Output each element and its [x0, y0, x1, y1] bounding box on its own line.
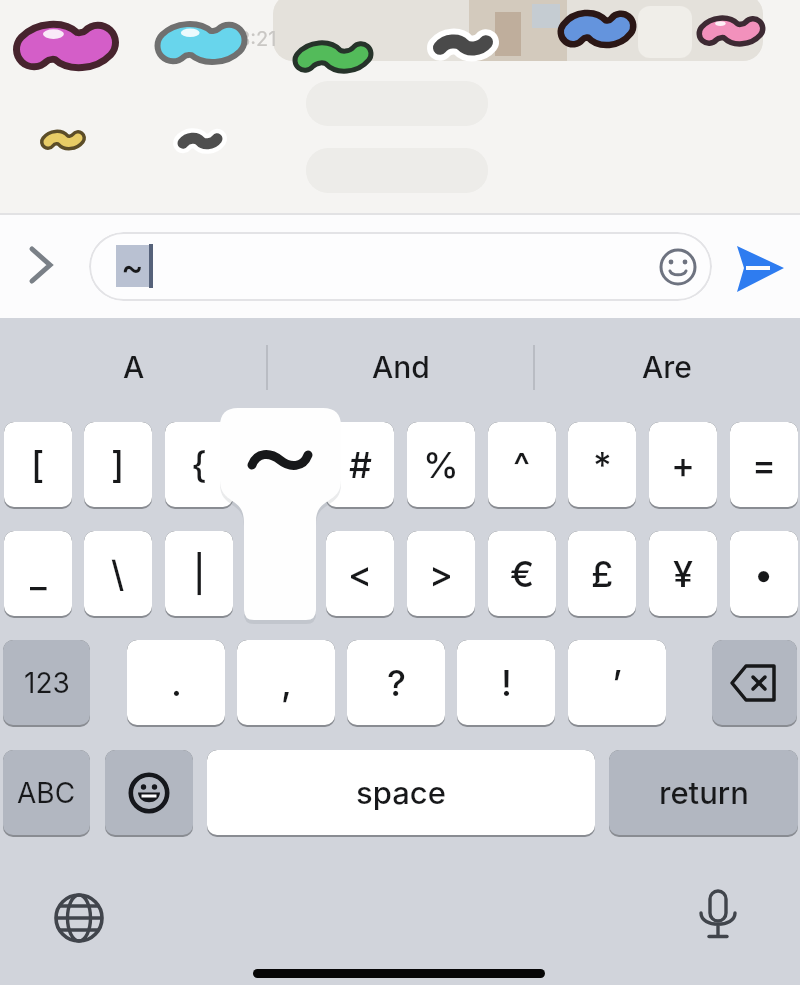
staticText: return: [659, 774, 749, 812]
staticText: ,: [281, 661, 292, 705]
button[interactable]: }: [246, 422, 314, 509]
staticText: ^: [513, 443, 531, 487]
staticText: space: [356, 774, 446, 812]
button[interactable]: [53, 892, 105, 944]
button[interactable]: [89, 232, 712, 301]
button[interactable]: \: [84, 531, 152, 618]
staticText: !: [501, 661, 512, 705]
button[interactable]: ^: [488, 422, 556, 509]
button[interactable]: ’: [568, 640, 666, 727]
button[interactable]: =: [730, 422, 798, 509]
staticText: =: [752, 443, 777, 487]
button[interactable]: [692, 889, 744, 945]
button[interactable]: ?: [347, 640, 445, 727]
button[interactable]: •: [730, 531, 798, 618]
button[interactable]: ¥: [649, 531, 717, 618]
staticText: }: [272, 443, 288, 487]
staticText: _: [30, 552, 47, 596]
button[interactable]: |: [165, 531, 233, 618]
button[interactable]: !: [457, 640, 555, 727]
staticText: A: [123, 349, 145, 385]
button[interactable]: +: [649, 422, 717, 509]
button[interactable]: ,: [237, 640, 335, 727]
staticText: 3:21: [238, 27, 277, 51]
staticText: And: [372, 349, 430, 385]
button[interactable]: {: [165, 422, 233, 509]
staticText: ?: [387, 661, 406, 705]
staticText: >: [429, 552, 454, 596]
staticText: \: [111, 552, 125, 596]
button[interactable]: £: [568, 531, 636, 618]
button[interactable]: .: [127, 640, 225, 727]
button[interactable]: #: [326, 422, 394, 509]
button[interactable]: ABC: [3, 750, 90, 837]
button[interactable]: €: [488, 531, 556, 618]
button[interactable]: space: [207, 750, 595, 837]
staticText: {: [191, 443, 207, 487]
staticText: .: [171, 661, 182, 705]
button[interactable]: And: [267, 318, 534, 415]
staticText: <: [348, 552, 373, 596]
staticText: *: [593, 443, 612, 487]
staticText: %: [423, 443, 459, 487]
staticText: ]: [111, 443, 125, 487]
staticText: 123: [24, 666, 70, 700]
button[interactable]: [28, 245, 54, 285]
button[interactable]: A: [0, 318, 267, 415]
button[interactable]: %: [407, 422, 475, 509]
button[interactable]: 123: [3, 640, 90, 727]
staticText: ’: [612, 661, 622, 705]
staticText: £: [591, 552, 614, 596]
button[interactable]: <: [326, 531, 394, 618]
button[interactable]: [105, 750, 193, 837]
staticText: •: [754, 552, 774, 596]
staticText: +: [671, 443, 696, 487]
staticText: #: [349, 443, 372, 487]
staticText: ¥: [673, 552, 694, 596]
staticText: |: [193, 552, 206, 596]
button[interactable]: Are: [534, 318, 800, 415]
button[interactable]: _: [4, 531, 72, 618]
staticText: Are: [642, 349, 692, 385]
button[interactable]: [658, 247, 698, 287]
button[interactable]: >: [407, 531, 475, 618]
button[interactable]: [712, 640, 797, 727]
staticText: ABC: [17, 776, 76, 810]
button[interactable]: [729, 242, 787, 296]
staticText: ~: [121, 246, 144, 287]
button[interactable]: [: [4, 422, 72, 509]
staticText: [: [31, 443, 45, 487]
button[interactable]: return: [609, 750, 798, 837]
staticText: €: [510, 552, 535, 596]
button[interactable]: ]: [84, 422, 152, 509]
button[interactable]: *: [568, 422, 636, 509]
